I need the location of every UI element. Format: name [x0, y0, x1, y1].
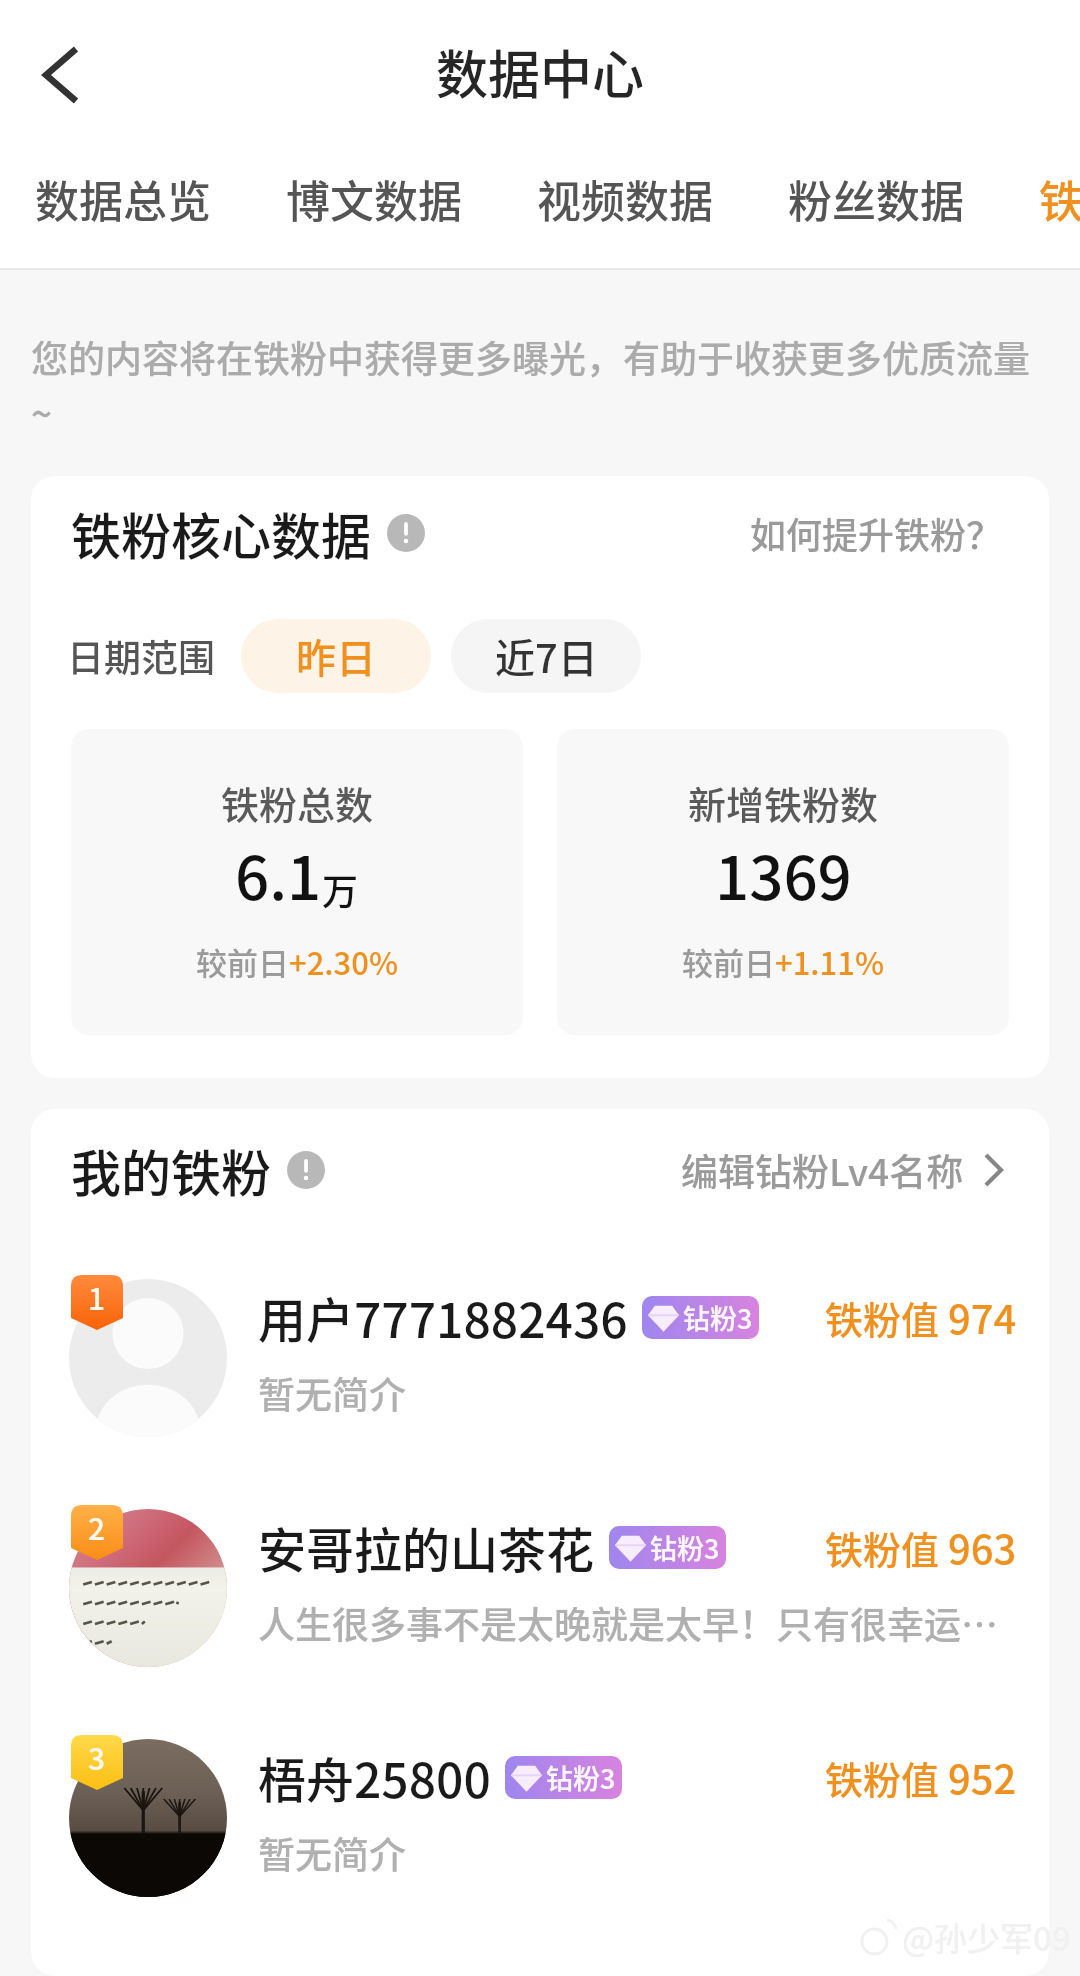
- button[interactable]: 粉丝数据: [782, 149, 970, 249]
- staticText: 铁粉值: [825, 1520, 948, 1575]
- staticText: 我的铁粉: [71, 1134, 271, 1206]
- staticText: 1: [88, 1275, 106, 1318]
- button[interactable]: 新增铁粉数: [557, 729, 1009, 1035]
- staticText: 钻粉3: [683, 1298, 753, 1337]
- staticText: 暂无简介: [258, 1366, 406, 1420]
- staticText: 6.1: [235, 830, 322, 917]
- staticText: 人生很多事不是太晚就是太早！只有很幸运…: [258, 1596, 998, 1650]
- staticText: 钻粉3: [650, 1528, 720, 1567]
- staticText: 1369: [715, 830, 852, 917]
- button[interactable]: 3: [31, 1696, 1049, 1926]
- staticText: 粉丝数据: [788, 167, 964, 231]
- staticText: 3: [88, 1735, 106, 1778]
- button[interactable]: 如何提升铁粉？: [750, 507, 1003, 559]
- staticText: @孙少军09: [902, 1913, 1071, 1961]
- staticText: 铁粉值: [825, 1290, 948, 1345]
- staticText: 数据总览: [35, 167, 211, 231]
- staticText: 974: [948, 1288, 1017, 1346]
- staticText: 2: [88, 1505, 106, 1548]
- staticText: 博文数据: [286, 167, 462, 231]
- staticText: 近7日: [495, 627, 598, 685]
- staticText: 铁粉核心数据: [71, 497, 371, 569]
- staticText: 编辑钻粉Lv4名称: [681, 1143, 964, 1197]
- button[interactable]: 1: [31, 1236, 1049, 1466]
- staticText: 较前日: [682, 939, 775, 984]
- staticText: 昨日: [296, 627, 376, 685]
- staticText: 铁粉值: [825, 1750, 948, 1805]
- staticText: 您的内容将在铁粉中获得更多曝光，有助于收获更多优质流量~: [31, 330, 1034, 439]
- staticText: 铁粉数据: [1039, 167, 1080, 231]
- staticText: 铁粉总数: [221, 775, 374, 830]
- button[interactable]: 铁粉总数: [71, 729, 523, 1035]
- staticText: 952: [948, 1748, 1017, 1806]
- staticText: 暂无简介: [258, 1826, 406, 1880]
- button[interactable]: 2: [31, 1466, 1049, 1696]
- staticText: 数据中心: [436, 34, 645, 109]
- staticText: 日期范围: [67, 629, 215, 683]
- button[interactable]: 铁粉数据: [1033, 149, 1080, 249]
- staticText: 用户7771882436: [258, 1282, 628, 1352]
- button[interactable]: Back: [22, 36, 100, 114]
- staticText: 梧舟25800: [258, 1742, 491, 1812]
- staticText: 如何提升铁粉？: [750, 507, 1003, 559]
- staticText: 新增铁粉数: [688, 775, 879, 830]
- button[interactable]: 视频数据: [531, 149, 719, 249]
- staticText: 较前日: [196, 939, 289, 984]
- staticText: 963: [948, 1518, 1017, 1576]
- staticText: +2.30%: [289, 939, 399, 984]
- button[interactable]: 博文数据: [280, 149, 468, 249]
- button[interactable]: 昨日: [241, 619, 431, 693]
- staticText: 万: [322, 863, 359, 915]
- staticText: 视频数据: [537, 167, 713, 231]
- staticText: +1.11%: [775, 939, 885, 984]
- staticText: 安哥拉的山茶花: [258, 1512, 595, 1582]
- staticText: 钻粉3: [546, 1758, 616, 1797]
- button[interactable]: 编辑钻粉Lv4名称: [681, 1143, 1003, 1197]
- button[interactable]: 数据总览: [29, 149, 217, 249]
- button[interactable]: 近7日: [451, 619, 641, 693]
